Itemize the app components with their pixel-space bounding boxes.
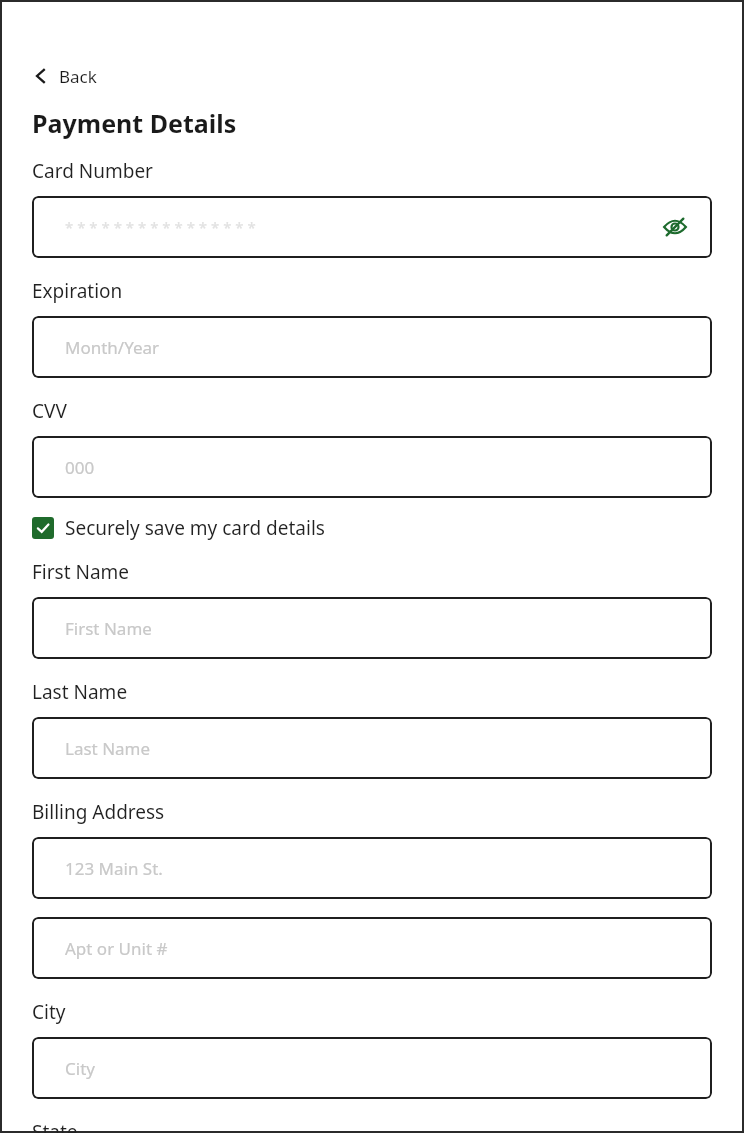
button[interactable]: Show card number xyxy=(658,210,692,244)
button[interactable]: City xyxy=(32,1037,712,1099)
staticText: Apt or Unit # xyxy=(65,937,168,960)
button[interactable]: Securely save my card details xyxy=(32,515,325,541)
staticText: First Name xyxy=(65,617,152,640)
staticText: State xyxy=(32,1119,78,1133)
button[interactable]: * * * * * * * * * * * * * * * * xyxy=(32,196,712,258)
staticText: 000 xyxy=(65,456,95,479)
staticText: Last Name xyxy=(32,679,128,705)
staticText: CVV xyxy=(32,398,67,424)
staticText: Month/Year xyxy=(65,336,160,359)
button[interactable]: Back xyxy=(32,63,97,89)
button[interactable]: 000 xyxy=(32,436,712,498)
button[interactable]: Last Name xyxy=(32,717,712,779)
staticText: Billing Address xyxy=(32,799,165,825)
staticText: City xyxy=(32,999,66,1025)
staticText: 123 Main St. xyxy=(65,857,163,880)
staticText: City xyxy=(65,1057,95,1080)
button[interactable]: Month/Year xyxy=(32,316,712,378)
staticText: Card Number xyxy=(32,158,153,184)
staticText: Securely save my card details xyxy=(65,515,325,541)
button[interactable]: 123 Main St. xyxy=(32,837,712,899)
button[interactable]: Apt or Unit # xyxy=(32,917,712,979)
staticText: * * * * * * * * * * * * * * * * xyxy=(65,217,256,237)
staticText: Expiration xyxy=(32,278,123,304)
staticText: Back xyxy=(59,65,97,88)
button[interactable]: First Name xyxy=(32,597,712,659)
staticText: Last Name xyxy=(65,737,151,760)
staticText: Payment Details xyxy=(32,106,237,140)
staticText: First Name xyxy=(32,559,130,585)
